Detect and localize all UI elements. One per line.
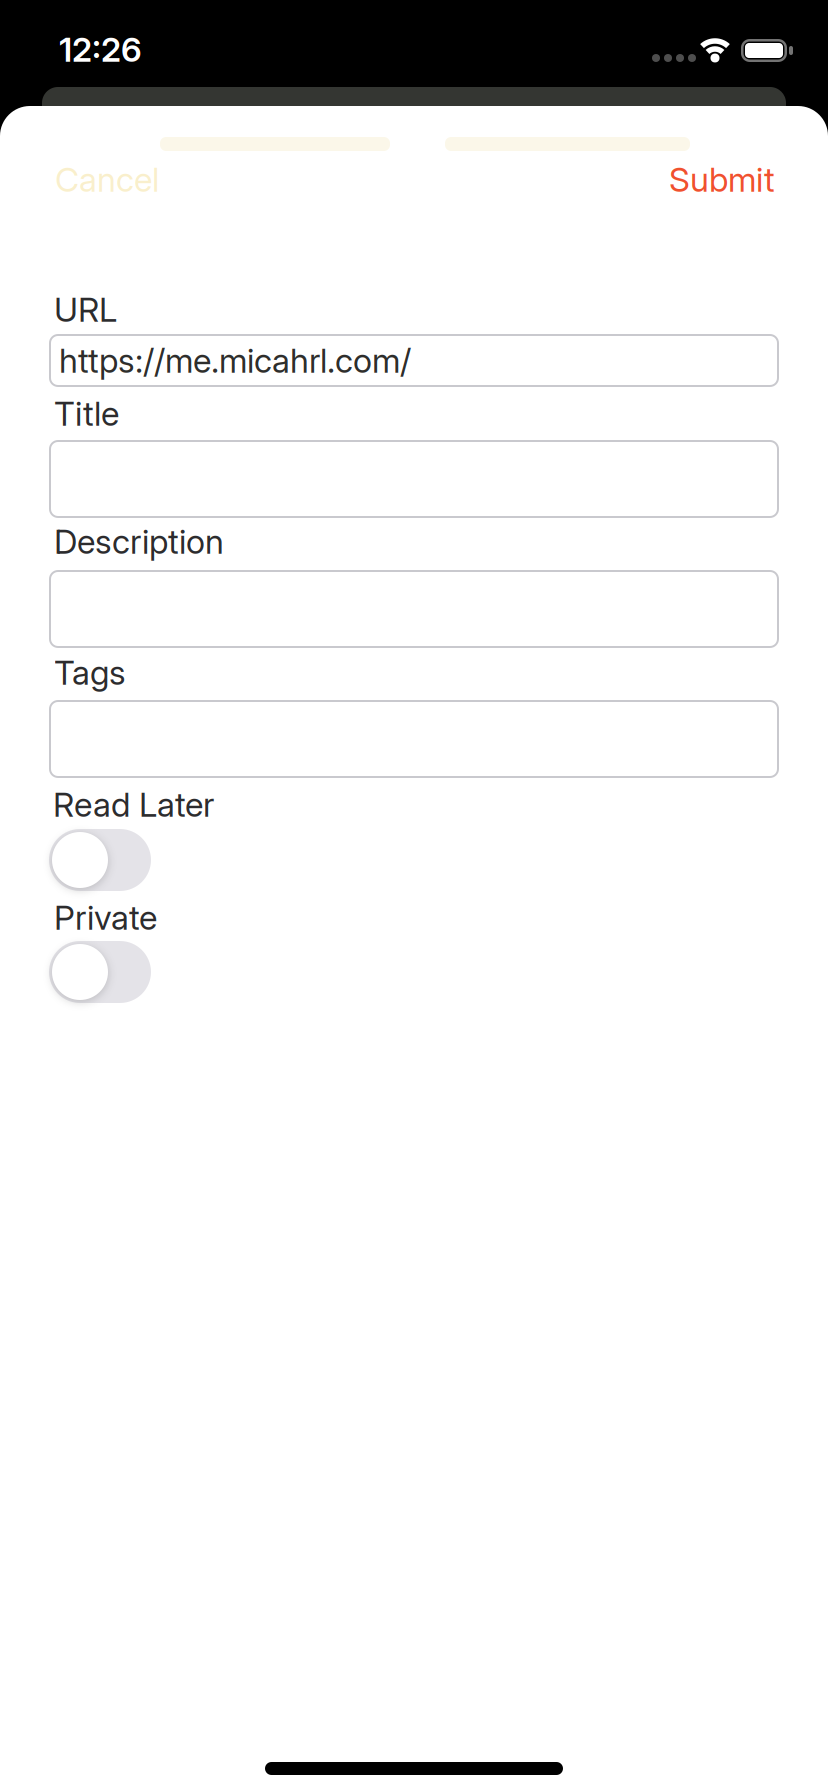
staticText: Private <box>54 898 157 937</box>
staticText: Description <box>54 522 224 561</box>
staticText: Submit <box>669 160 775 199</box>
button[interactable]: Cancel <box>55 160 159 199</box>
staticText: Tags <box>54 653 126 692</box>
button[interactable]: Read Later <box>49 829 151 891</box>
staticText: 12:26 <box>59 30 142 69</box>
staticText: Cancel <box>55 160 159 199</box>
staticText: Read Later <box>53 785 214 824</box>
button[interactable]: Submit <box>669 160 775 199</box>
staticText: URL <box>54 290 117 329</box>
staticText: Title <box>54 394 119 433</box>
staticText: https://me.micahrl.com/ <box>59 341 411 380</box>
textField[interactable]: https://me.micahrl.com/ <box>59 341 779 380</box>
button[interactable]: Private <box>49 941 151 1003</box>
